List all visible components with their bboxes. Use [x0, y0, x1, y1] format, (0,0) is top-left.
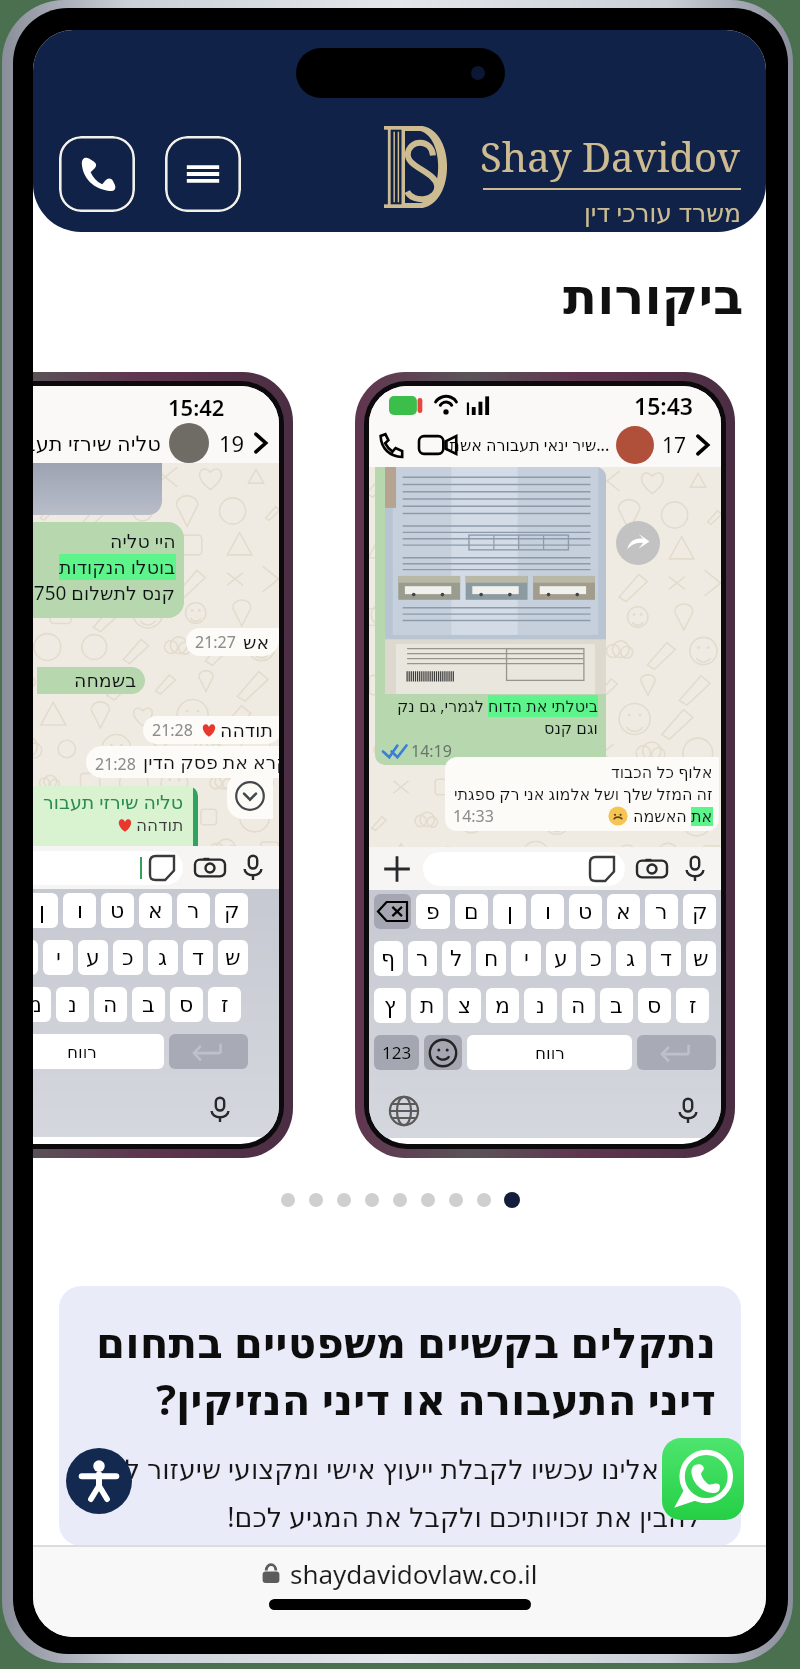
- button[interactable]: ב: [132, 987, 165, 1022]
- staticText: טליה שירזי תעבור: [43, 789, 184, 815]
- button[interactable]: ס: [170, 987, 203, 1022]
- button[interactable]: רווח: [467, 1035, 632, 1070]
- staticText: ?דיני התעבורה או דיני הנזיקין: [63, 1370, 716, 1427]
- staticText: א: [148, 898, 163, 924]
- staticText: זה המזל שלך ושל אלמוג אני רק ספגתי: [454, 783, 713, 805]
- staticText: פנו אלינו עכשיו לקבלת ייעוץ אישי ומקצועי…: [63, 1450, 701, 1487]
- button[interactable]: כ: [581, 941, 611, 976]
- button[interactable]: ג: [616, 941, 646, 976]
- button[interactable]: ג: [148, 940, 178, 975]
- staticText: ו: [545, 899, 551, 925]
- staticText: רווח: [67, 1042, 97, 1062]
- button[interactable]: ד: [183, 940, 213, 975]
- button[interactable]: נ: [56, 987, 89, 1022]
- button[interactable]: א: [607, 894, 640, 929]
- staticText: ד: [192, 945, 205, 971]
- staticText: וגם קנס: [544, 717, 598, 739]
- button[interactable]: ז: [676, 988, 709, 1023]
- button[interactable]: ד: [651, 941, 681, 976]
- staticText: ט: [110, 898, 125, 924]
- staticText: טליה שירזי תעבור: [33, 429, 161, 458]
- staticText: כ: [122, 945, 134, 971]
- staticText: ג: [626, 946, 636, 972]
- button[interactable]: צ: [448, 988, 481, 1023]
- button[interactable]: מ: [33, 987, 51, 1022]
- button[interactable]: Slide 7: [442, 1186, 470, 1214]
- button[interactable]: א: [139, 893, 172, 928]
- button[interactable]: Slide 1: [274, 1186, 302, 1214]
- button[interactable]: Forward: [616, 521, 660, 565]
- button[interactable]: Slide 8: [470, 1186, 498, 1214]
- button[interactable]: ן: [33, 893, 58, 928]
- staticText: ש: [225, 945, 241, 971]
- button[interactable]: ץ: [374, 988, 406, 1023]
- staticText: ב: [142, 992, 155, 1018]
- button[interactable]: ק: [683, 894, 716, 929]
- staticText: ר: [655, 899, 668, 925]
- button[interactable]: ח: [476, 941, 506, 976]
- button[interactable]: ר: [177, 893, 210, 928]
- button[interactable]: WhatsApp: [662, 1438, 744, 1520]
- button[interactable]: ט: [569, 894, 602, 929]
- button[interactable]: רווח: [33, 1034, 164, 1069]
- button[interactable]: Slide 6: [414, 1186, 442, 1214]
- button[interactable]: ם: [455, 894, 488, 929]
- button[interactable]: Slide 9: [498, 1186, 526, 1214]
- staticText: ס: [647, 993, 662, 1019]
- button[interactable]: Slide 3: [330, 1186, 358, 1214]
- button[interactable]: י: [511, 941, 541, 976]
- staticText: ג: [158, 945, 168, 971]
- button[interactable]: ה: [562, 988, 595, 1023]
- staticText: ר: [187, 898, 200, 924]
- button[interactable]: ע: [78, 940, 108, 975]
- button[interactable]: ע: [546, 941, 576, 976]
- button[interactable]: ל: [442, 941, 471, 976]
- button[interactable]: פ: [416, 894, 450, 929]
- button[interactable]: ט: [101, 893, 134, 928]
- button[interactable]: כ: [113, 940, 143, 975]
- button[interactable]: Return: [637, 1035, 716, 1070]
- button[interactable]: ש: [686, 941, 716, 976]
- button[interactable]: ו: [63, 893, 96, 928]
- button[interactable]: מ: [486, 988, 519, 1023]
- button[interactable]: Return: [169, 1034, 248, 1069]
- button[interactable]: ו: [531, 894, 564, 929]
- button[interactable]: Slide 4: [358, 1186, 386, 1214]
- button[interactable]: ר: [408, 941, 437, 976]
- button[interactable]: ש: [218, 940, 248, 975]
- button[interactable]: Slide 2: [302, 1186, 330, 1214]
- button[interactable]: Emoji: [424, 1035, 462, 1070]
- staticText: ביקורות: [563, 268, 744, 326]
- button[interactable]: ב: [600, 988, 633, 1023]
- staticText: ן: [507, 899, 513, 925]
- button[interactable]: ר: [645, 894, 678, 929]
- button[interactable]: Menu: [165, 136, 241, 212]
- button[interactable]: ן: [493, 894, 526, 929]
- staticText: ב: [610, 993, 623, 1019]
- staticText: ץ: [384, 993, 396, 1019]
- button[interactable]: Backspace: [374, 894, 411, 929]
- button[interactable]: Accessibility: [66, 1448, 132, 1514]
- staticText: בוטלו הנקודות: [59, 554, 176, 580]
- button[interactable]: ה: [94, 987, 127, 1022]
- staticText: 15:42: [168, 392, 225, 422]
- staticText: י: [56, 945, 61, 971]
- button[interactable]: ח: [33, 940, 38, 975]
- staticText: ף: [381, 946, 396, 972]
- button[interactable]: Scroll down: [227, 773, 273, 819]
- button[interactable]: ז: [208, 987, 241, 1022]
- staticText: ז: [689, 993, 697, 1019]
- staticText: תודהה: [220, 719, 273, 741]
- staticText: ו: [77, 898, 83, 924]
- button[interactable]: 123: [374, 1035, 419, 1070]
- button[interactable]: ף: [374, 941, 403, 976]
- button[interactable]: ק: [215, 893, 248, 928]
- button[interactable]: Slide 5: [386, 1186, 414, 1214]
- button[interactable]: ס: [638, 988, 671, 1023]
- button[interactable]: ת: [411, 988, 443, 1023]
- staticText: פ: [426, 899, 440, 925]
- button[interactable]: נ: [524, 988, 557, 1023]
- staticText: אקרא את פסק הדין: [143, 749, 279, 775]
- button[interactable]: Call: [59, 136, 135, 212]
- button[interactable]: י: [43, 940, 73, 975]
